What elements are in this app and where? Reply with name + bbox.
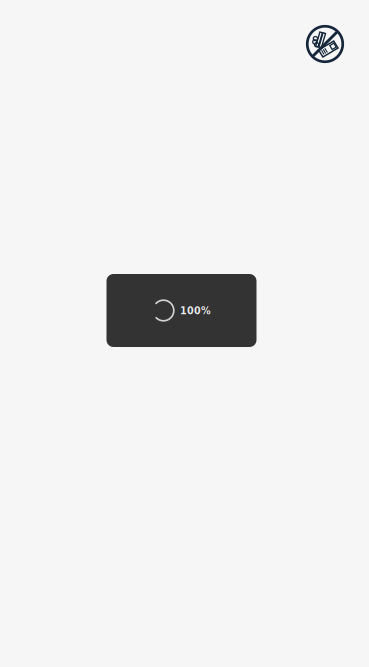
button[interactable]: Cash not accepted [305, 24, 345, 64]
staticText: 100% [180, 304, 211, 317]
